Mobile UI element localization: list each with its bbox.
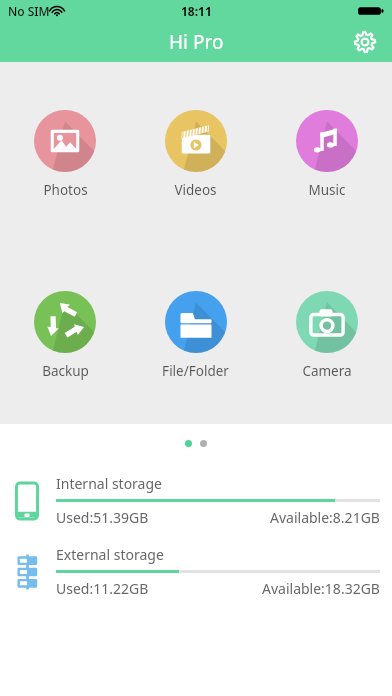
staticText: Available:8.21GB [270, 508, 380, 527]
staticText: Available:18.32GB [262, 579, 380, 598]
button[interactable]: File/Folder [130, 291, 261, 380]
button[interactable]: Videos [130, 110, 261, 199]
staticText: Camera [302, 362, 352, 380]
staticText: No SIM [8, 3, 50, 19]
staticText: File/Folder [162, 362, 229, 380]
staticText: Hi Pro [169, 29, 224, 55]
button[interactable]: Settings [348, 25, 382, 59]
button[interactable]: Internal storage [10, 474, 380, 527]
staticText: Used:51.39GB [56, 508, 149, 527]
staticText: Backup [42, 362, 89, 380]
staticText: Videos [174, 181, 217, 199]
button[interactable]: External storage [10, 545, 380, 598]
staticText: Internal storage [56, 474, 162, 493]
button[interactable]: Photos [0, 110, 130, 199]
button[interactable]: Camera [261, 291, 392, 380]
staticText: External storage [56, 545, 164, 564]
staticText: Used:11.22GB [56, 579, 149, 598]
staticText: Music [308, 181, 346, 199]
button[interactable]: Music [261, 110, 392, 199]
button[interactable]: Backup [0, 291, 130, 380]
staticText: 18:11 [181, 3, 212, 19]
staticText: Photos [43, 181, 88, 199]
